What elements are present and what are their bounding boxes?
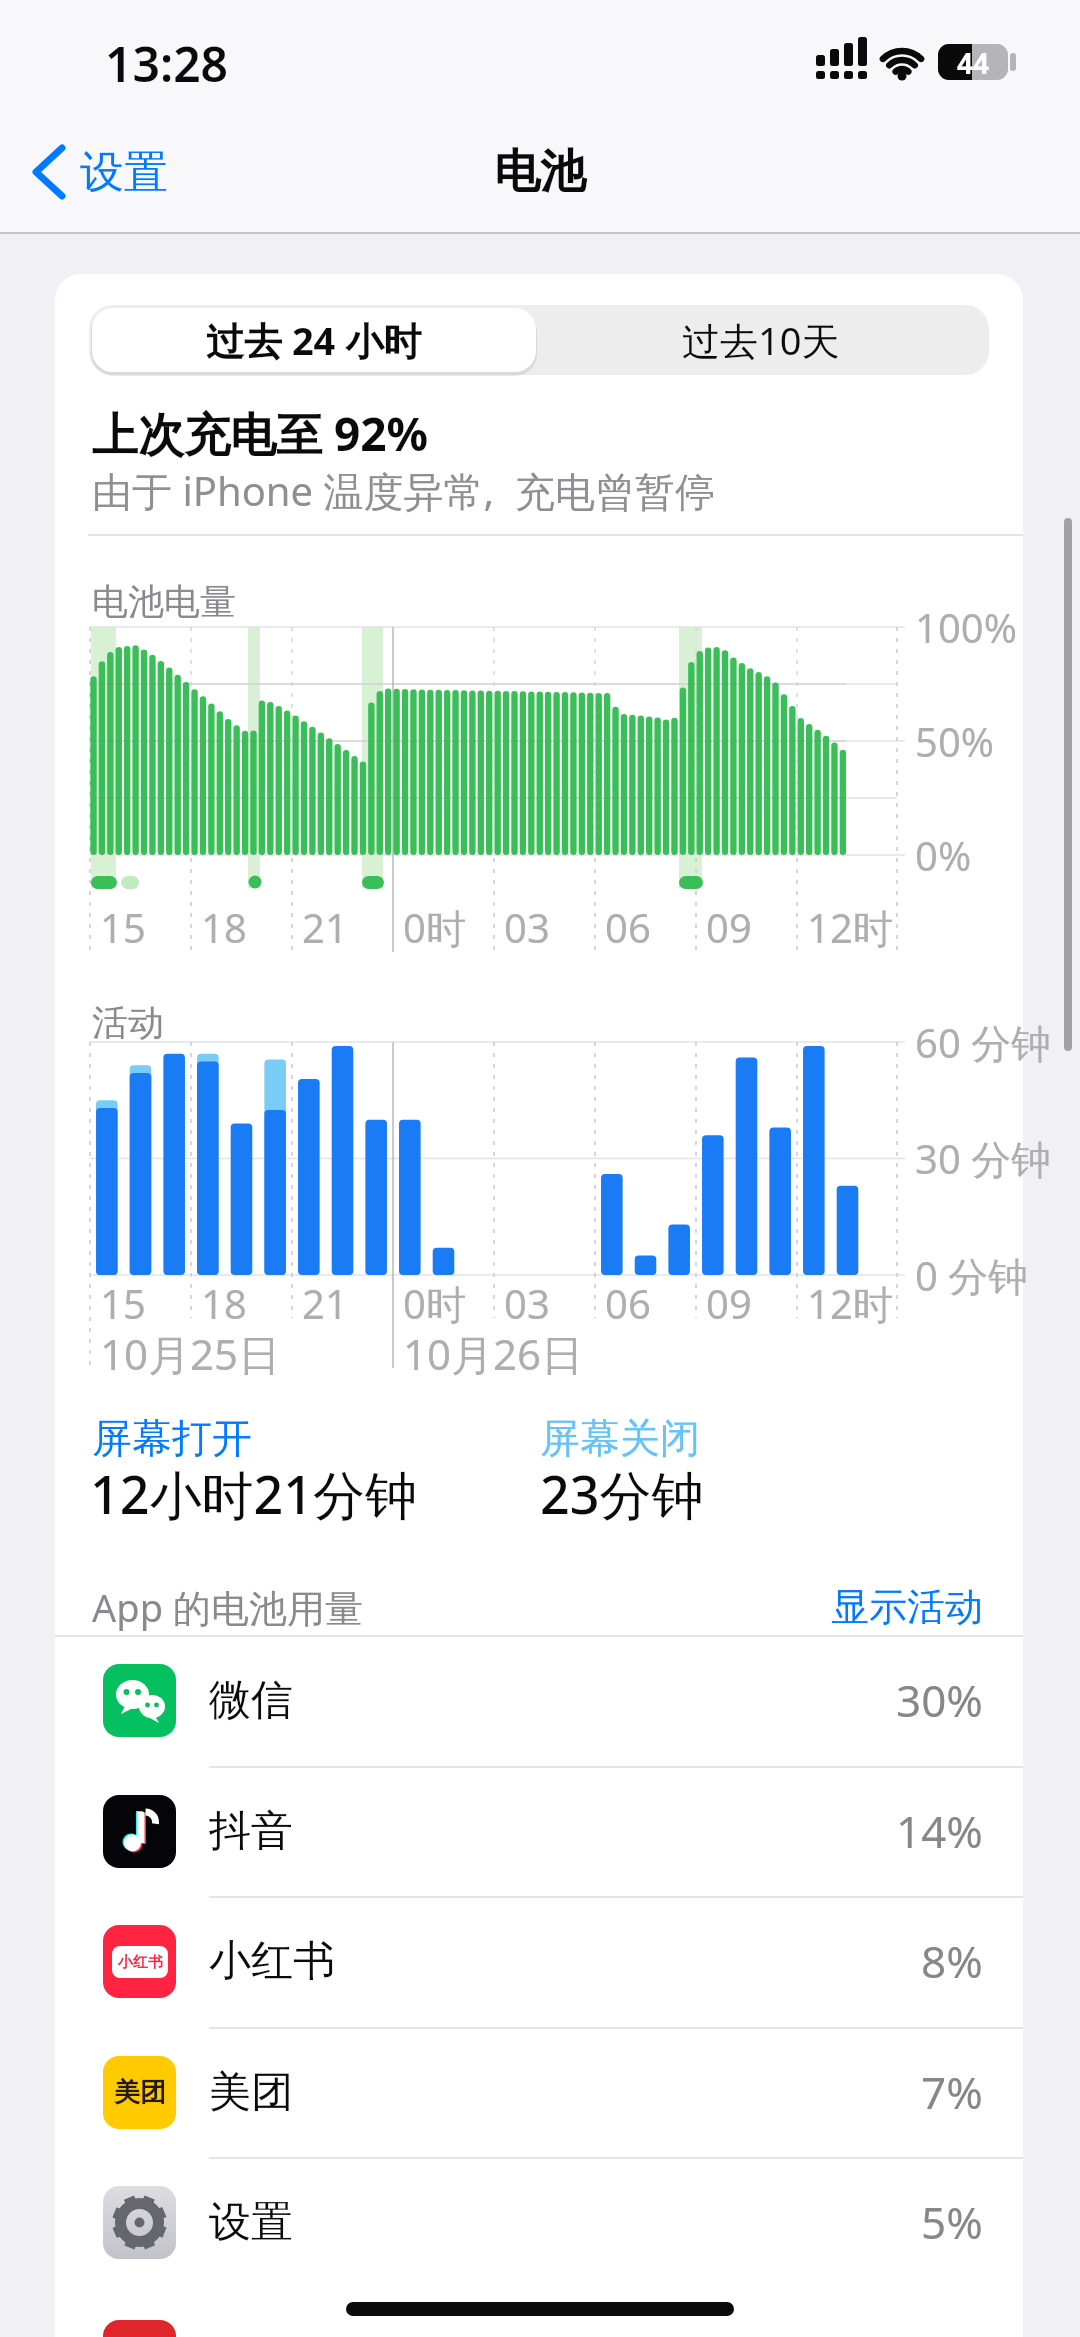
staticText: 微信	[209, 1674, 293, 1727]
staticText: 7%	[921, 2062, 983, 2122]
staticText: 06	[605, 900, 651, 954]
staticText: 06	[605, 1276, 651, 1330]
staticText: 8%	[921, 1931, 983, 1991]
staticText: 电池	[494, 143, 586, 201]
button[interactable]: 小红书	[55, 1896, 1023, 2026]
staticText: 过去10天	[682, 314, 840, 366]
staticText: 小红书	[118, 1953, 163, 1972]
staticText: 12时	[807, 900, 893, 955]
staticText: 0时	[403, 1276, 466, 1331]
staticText: 活动	[92, 1000, 164, 1045]
staticText: 44	[957, 44, 990, 80]
staticText: 50%	[915, 714, 994, 768]
staticText: App 的电池用量	[92, 1581, 363, 1633]
staticText: 电池电量	[92, 579, 236, 624]
button[interactable]: 过去10天	[536, 308, 986, 372]
button[interactable]: 显示活动	[783, 1575, 983, 1639]
button[interactable]: 美团	[55, 2027, 1023, 2157]
staticText: 过去 24 小时	[206, 314, 422, 366]
staticText: 0%	[915, 828, 972, 882]
staticText: 23分钟	[540, 1458, 704, 1522]
staticText: 30 分钟	[915, 1131, 1052, 1186]
staticText: 15	[100, 900, 146, 954]
staticText: 09	[706, 900, 752, 954]
button[interactable]: 微信	[55, 1635, 1023, 1765]
staticText: 100%	[915, 600, 1017, 654]
staticText: 18	[201, 1276, 247, 1330]
staticText: 12小时21分钟	[90, 1458, 417, 1522]
staticText: 15	[100, 1276, 146, 1330]
staticText: 13:28	[105, 31, 229, 95]
button[interactable]: 设置	[26, 140, 226, 204]
staticText: 14%	[896, 1801, 983, 1861]
staticText: 抖音	[209, 1805, 293, 1858]
staticText: 10月25日	[100, 1325, 281, 1382]
staticText: 03	[504, 1276, 550, 1330]
staticText: 18	[201, 900, 247, 954]
staticText: 12时	[807, 1276, 893, 1331]
staticText: 5%	[921, 2192, 983, 2252]
staticText: 小红书	[209, 1935, 335, 1988]
staticText: 上次充电至 92%	[92, 402, 429, 465]
staticText: 03	[504, 900, 550, 954]
staticText: 美团	[209, 2066, 293, 2119]
button[interactable]: 过去 24 小时	[92, 308, 536, 372]
staticText: 美团	[114, 2076, 166, 2109]
staticText: 21	[302, 1276, 348, 1330]
staticText: 10月26日	[403, 1325, 584, 1382]
button[interactable]: 设置	[55, 2157, 1023, 2287]
button[interactable]: 抖音	[55, 1766, 1023, 1896]
staticText: 60 分钟	[915, 1015, 1052, 1070]
staticText: 0时	[403, 900, 466, 955]
staticText: 设置	[80, 145, 168, 200]
staticText: 设置	[209, 2196, 293, 2249]
staticText: 由于 iPhone 温度异常, 充电曾暂停	[92, 463, 716, 518]
staticText: 30%	[896, 1670, 983, 1730]
staticText: 屏幕关闭	[540, 1413, 700, 1463]
staticText: 屏幕打开	[92, 1413, 252, 1463]
staticText: 21	[302, 900, 348, 954]
staticText: 09	[706, 1276, 752, 1330]
staticText: 0 分钟	[915, 1248, 1029, 1303]
staticText: 显示活动	[831, 1583, 983, 1631]
